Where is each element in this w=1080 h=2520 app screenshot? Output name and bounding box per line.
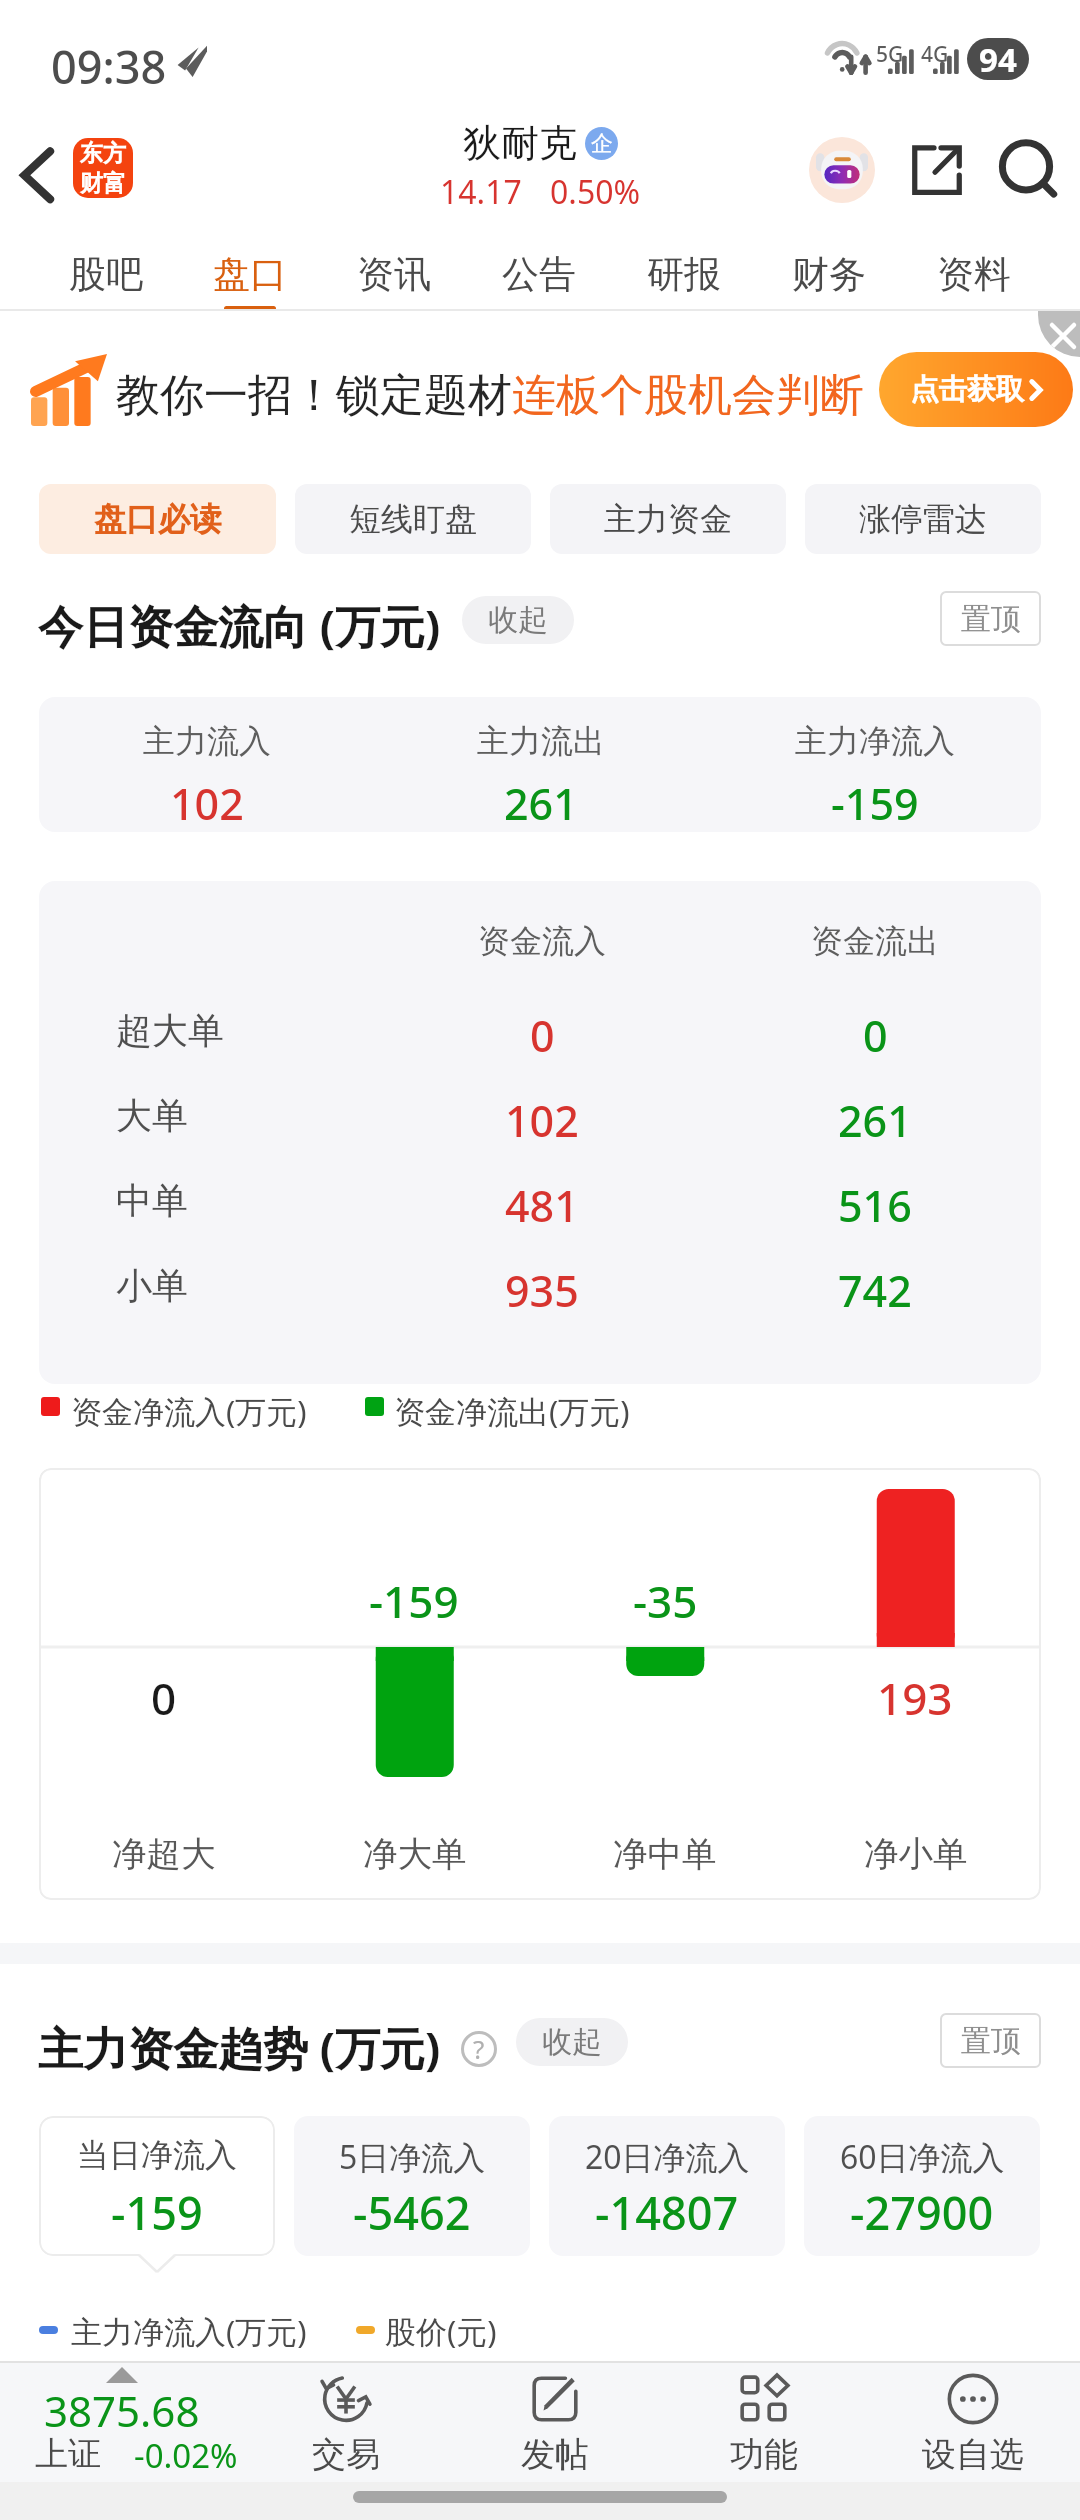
staticText: 102	[505, 1091, 579, 1150]
staticText: 09:38	[51, 36, 167, 97]
button[interactable]: 涨停雷达	[805, 484, 1041, 554]
staticText: -35	[633, 1571, 698, 1631]
button[interactable]: AI assistant	[809, 137, 875, 203]
button[interactable]: 60日净流入	[804, 2116, 1040, 2256]
button[interactable]: 资料	[901, 227, 1046, 311]
button[interactable]: 盘口	[178, 227, 322, 311]
staticText: 14.17	[440, 170, 522, 214]
button[interactable]: Help	[461, 2031, 497, 2067]
staticText: 研报	[647, 251, 721, 298]
staticText: 盘口必读	[94, 499, 222, 539]
staticText: 0	[151, 1668, 177, 1728]
staticText: 教你一招！锁定题材	[116, 368, 512, 423]
staticText: 净大单	[363, 1833, 467, 1876]
staticText: 短线盯盘	[349, 499, 477, 539]
button[interactable]: 交易	[246, 2361, 446, 2482]
button[interactable]: 当日净流入	[39, 2116, 275, 2256]
button[interactable]: 主力资金	[550, 484, 786, 554]
staticText: 东方	[80, 139, 126, 168]
staticText: 资料	[937, 251, 1011, 298]
staticText: -27900	[850, 2182, 994, 2243]
staticText: 0	[530, 1006, 555, 1065]
staticText: ?	[473, 2031, 485, 2066]
staticText: 狄耐克	[463, 119, 577, 167]
staticText: 935	[505, 1261, 579, 1320]
staticText: 收起	[488, 601, 548, 639]
staticText: 点击获取	[910, 372, 1024, 408]
staticText: 发帖	[521, 2433, 589, 2476]
staticText: 资金净流入(万元)	[71, 1390, 307, 1430]
button[interactable]: 功能	[664, 2361, 864, 2482]
staticText: 盘口	[213, 251, 287, 298]
staticText: 主力资金趋势 (万元)	[38, 2017, 441, 2078]
button[interactable]: Search	[990, 134, 1062, 206]
staticText: 20日净流入	[585, 2135, 750, 2179]
button[interactable]: 20日净流入	[549, 2116, 785, 2256]
staticText: 中单	[116, 1178, 188, 1223]
staticText: 主力流入	[143, 721, 271, 761]
button[interactable]: 短线盯盘	[295, 484, 531, 554]
button[interactable]: 3875.68	[0, 2361, 255, 2482]
staticText: 小单	[116, 1263, 188, 1308]
staticText: 净小单	[864, 1833, 968, 1876]
staticText: -159	[111, 2182, 203, 2243]
staticText: 上证	[35, 2433, 101, 2475]
staticText: 5日净流入	[339, 2135, 486, 2179]
button[interactable]: East Money home	[73, 138, 133, 198]
staticText: 742	[838, 1261, 912, 1320]
button[interactable]: 财务	[756, 227, 901, 311]
button[interactable]: 发帖	[455, 2361, 655, 2482]
button[interactable]: 设自选	[873, 2361, 1073, 2482]
button[interactable]: Back	[0, 128, 76, 208]
staticText: 今日资金流向 (万元)	[38, 595, 441, 656]
staticText: 102	[170, 774, 244, 832]
staticText: 主力净流入(万元)	[71, 2310, 307, 2350]
staticText: 0	[863, 1006, 888, 1065]
staticText: 交易	[312, 2433, 380, 2476]
button[interactable]: 点击获取	[879, 352, 1073, 427]
staticText: 5G	[876, 40, 904, 69]
staticText: 516	[838, 1176, 912, 1235]
button[interactable]: Close ad	[1038, 311, 1080, 357]
staticText: -159	[369, 1571, 459, 1631]
staticText: 资金流出	[811, 921, 939, 961]
button[interactable]: 置顶	[940, 2013, 1041, 2068]
button[interactable]: Share	[905, 138, 969, 202]
button[interactable]: 盘口必读	[39, 484, 276, 554]
staticText: 收起	[542, 2023, 602, 2061]
staticText: 当日净流入	[77, 2135, 237, 2175]
staticText: 资讯	[357, 251, 431, 298]
staticText: 4G	[921, 40, 949, 69]
staticText: 涨停雷达	[859, 499, 987, 539]
staticText: 连板个股机会判断	[512, 368, 864, 423]
button[interactable]: 研报	[611, 227, 756, 311]
staticText: 193	[877, 1668, 953, 1728]
staticText: -0.02%	[134, 2433, 238, 2478]
staticText: 设自选	[922, 2433, 1024, 2476]
staticText: 60日净流入	[840, 2135, 1005, 2179]
staticText: 股价(元)	[385, 2310, 497, 2350]
staticText: 股吧	[69, 251, 143, 298]
button[interactable]: 收起	[516, 2018, 628, 2066]
staticText: 财富	[80, 169, 126, 198]
button[interactable]: 5日净流入	[294, 2116, 530, 2256]
staticText: 企	[591, 130, 613, 158]
button[interactable]: 资讯	[322, 227, 466, 311]
staticText: 主力流出	[477, 721, 605, 761]
staticText: 净超大	[112, 1833, 216, 1876]
staticText: 净中单	[613, 1833, 717, 1876]
staticText: 481	[505, 1176, 579, 1235]
staticText: 261	[838, 1091, 912, 1150]
button[interactable]: 收起	[462, 596, 574, 644]
staticText: -159	[831, 774, 919, 832]
staticText: 功能	[730, 2433, 798, 2476]
staticText: -5462	[353, 2182, 471, 2243]
button[interactable]: 公告	[466, 227, 611, 311]
staticText: 资金净流出(万元)	[394, 1390, 630, 1430]
staticText: 大单	[116, 1093, 188, 1138]
staticText: 主力资金	[604, 499, 732, 539]
staticText: 主力净流入	[795, 721, 955, 761]
button[interactable]: 置顶	[940, 591, 1041, 646]
staticText: 财务	[792, 251, 866, 298]
button[interactable]: 股吧	[34, 227, 178, 311]
